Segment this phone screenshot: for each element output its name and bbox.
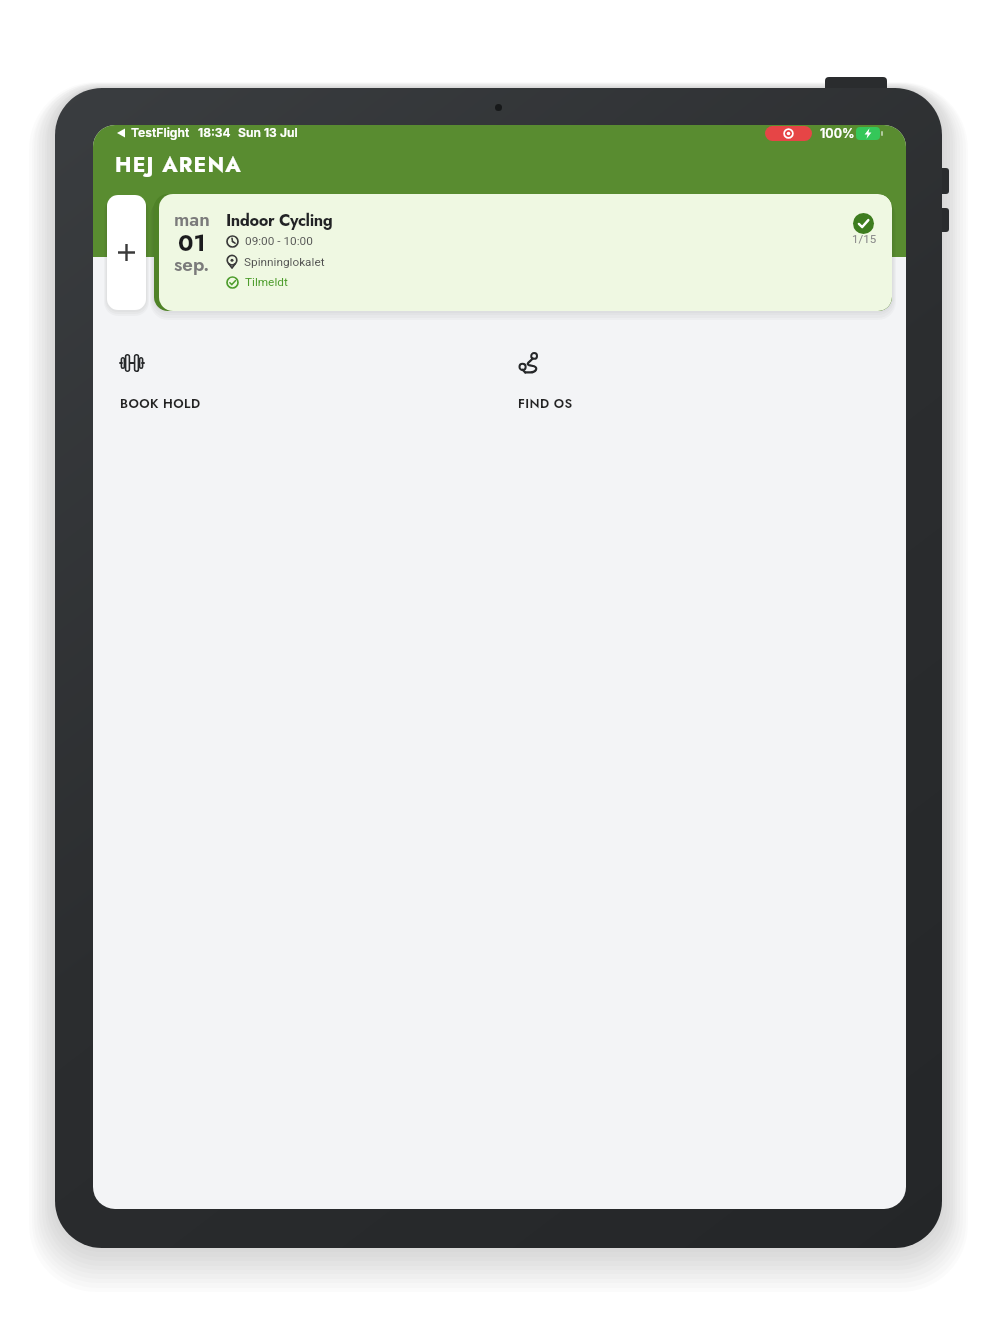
- staticText: Indoor Cycling: [226, 208, 333, 232]
- staticText: Sun 13 Jul: [238, 125, 298, 140]
- staticText: 09:00 - 10:00: [245, 234, 313, 248]
- button[interactable]: man: [154, 194, 892, 311]
- staticText: HEJ ARENA: [115, 150, 242, 180]
- staticText: 01: [178, 226, 206, 260]
- button[interactable]: FIND OS: [518, 352, 573, 412]
- staticText: 100%: [820, 126, 855, 141]
- staticText: TestFlight: [131, 125, 190, 140]
- staticText: 18:34: [198, 125, 231, 140]
- staticText: BOOK HOLD: [120, 394, 201, 412]
- button[interactable]: BOOK HOLD: [120, 354, 201, 412]
- staticText: Tilmeldt: [245, 275, 288, 289]
- button[interactable]: [107, 195, 146, 310]
- staticText: FIND OS: [518, 394, 573, 412]
- staticText: Spinninglokalet: [244, 255, 325, 269]
- button[interactable]: [765, 126, 812, 141]
- staticText: 1/15: [852, 232, 877, 245]
- staticText: sep.: [174, 251, 210, 278]
- staticText: man: [174, 206, 210, 233]
